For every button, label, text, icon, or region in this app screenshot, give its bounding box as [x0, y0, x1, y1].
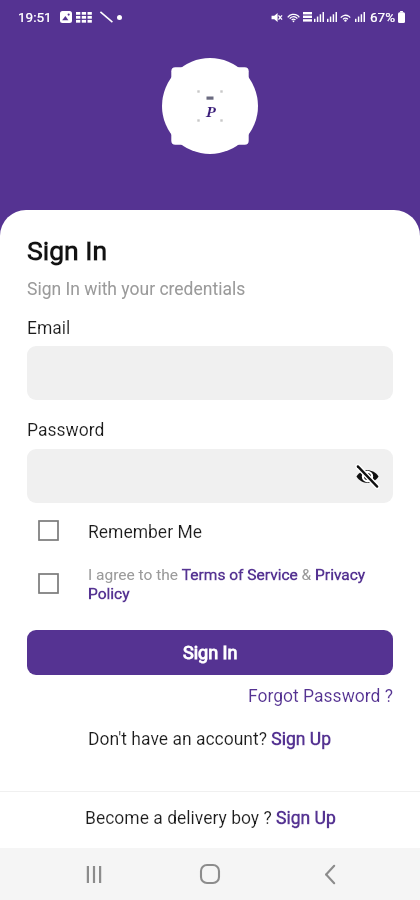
- staticText: Sign In: [27, 235, 108, 266]
- button[interactable]: Forgot Password ?: [248, 686, 394, 707]
- button[interactable]: Back: [308, 852, 352, 896]
- button[interactable]: Remember Me: [27, 522, 393, 543]
- button[interactable]: Recents: [72, 852, 116, 896]
- staticText: Password: [27, 420, 105, 441]
- button[interactable]: Don't have an account? Sign Up: [88, 729, 332, 750]
- button[interactable]: Show password: [354, 463, 380, 489]
- staticText: Forgot Password ?: [248, 686, 394, 707]
- staticText: Sign In with your credentials: [27, 279, 246, 300]
- staticText: 67%: [370, 9, 396, 25]
- button[interactable]: Sign In: [27, 630, 393, 675]
- staticText: 19:51: [18, 9, 52, 25]
- button[interactable]: Home: [188, 852, 232, 896]
- button[interactable]: I agree to the Terms of Service & Privac…: [27, 566, 393, 603]
- staticText: I agree to the Terms of Service & Privac…: [88, 566, 393, 603]
- staticText: Don't have an account? Sign Up: [88, 729, 332, 750]
- button[interactable]: Become a delivery boy ? Sign Up: [85, 808, 336, 829]
- staticText: Email: [27, 318, 71, 339]
- staticText: Remember Me: [88, 522, 202, 543]
- button[interactable]: Password input: [27, 449, 393, 503]
- staticText: Become a delivery boy ? Sign Up: [85, 808, 336, 829]
- staticText: Sign In: [183, 642, 238, 663]
- staticText: P: [206, 101, 216, 121]
